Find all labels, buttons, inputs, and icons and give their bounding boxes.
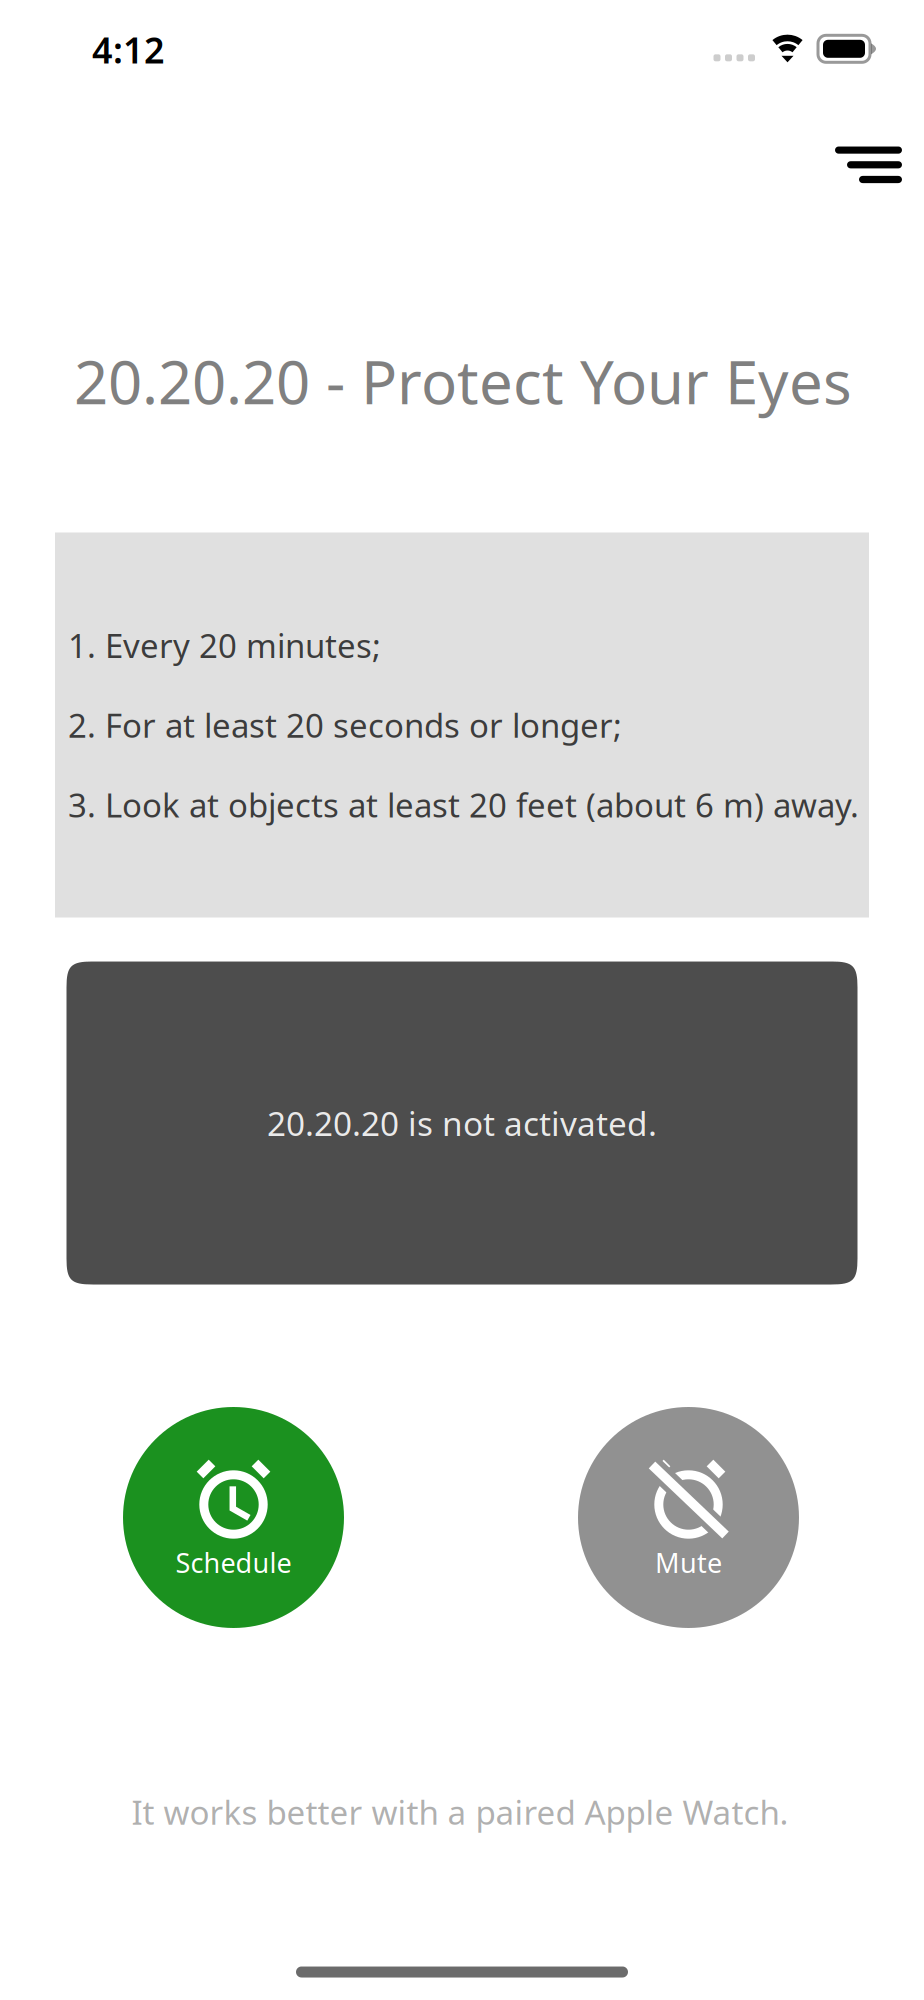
button[interactable]: Menu [795,120,924,209]
staticText: 4:12 [92,26,165,73]
staticText: 20.20.20 - Protect Your Eyes [74,341,852,421]
staticText: 1. Every 20 minutes; [68,623,381,667]
staticText: 20.20.20 is not activated. [267,1101,657,1145]
staticText: Mute [655,1544,722,1580]
button[interactable]: Mute [578,1407,799,1628]
staticText: It works better with a paired Apple Watc… [131,1790,788,1834]
staticText: 3. Look at objects at least 20 feet (abo… [68,783,859,827]
staticText: Schedule [175,1544,291,1580]
button[interactable]: Schedule [123,1407,344,1628]
staticText: 2. For at least 20 seconds or longer; [68,703,622,747]
